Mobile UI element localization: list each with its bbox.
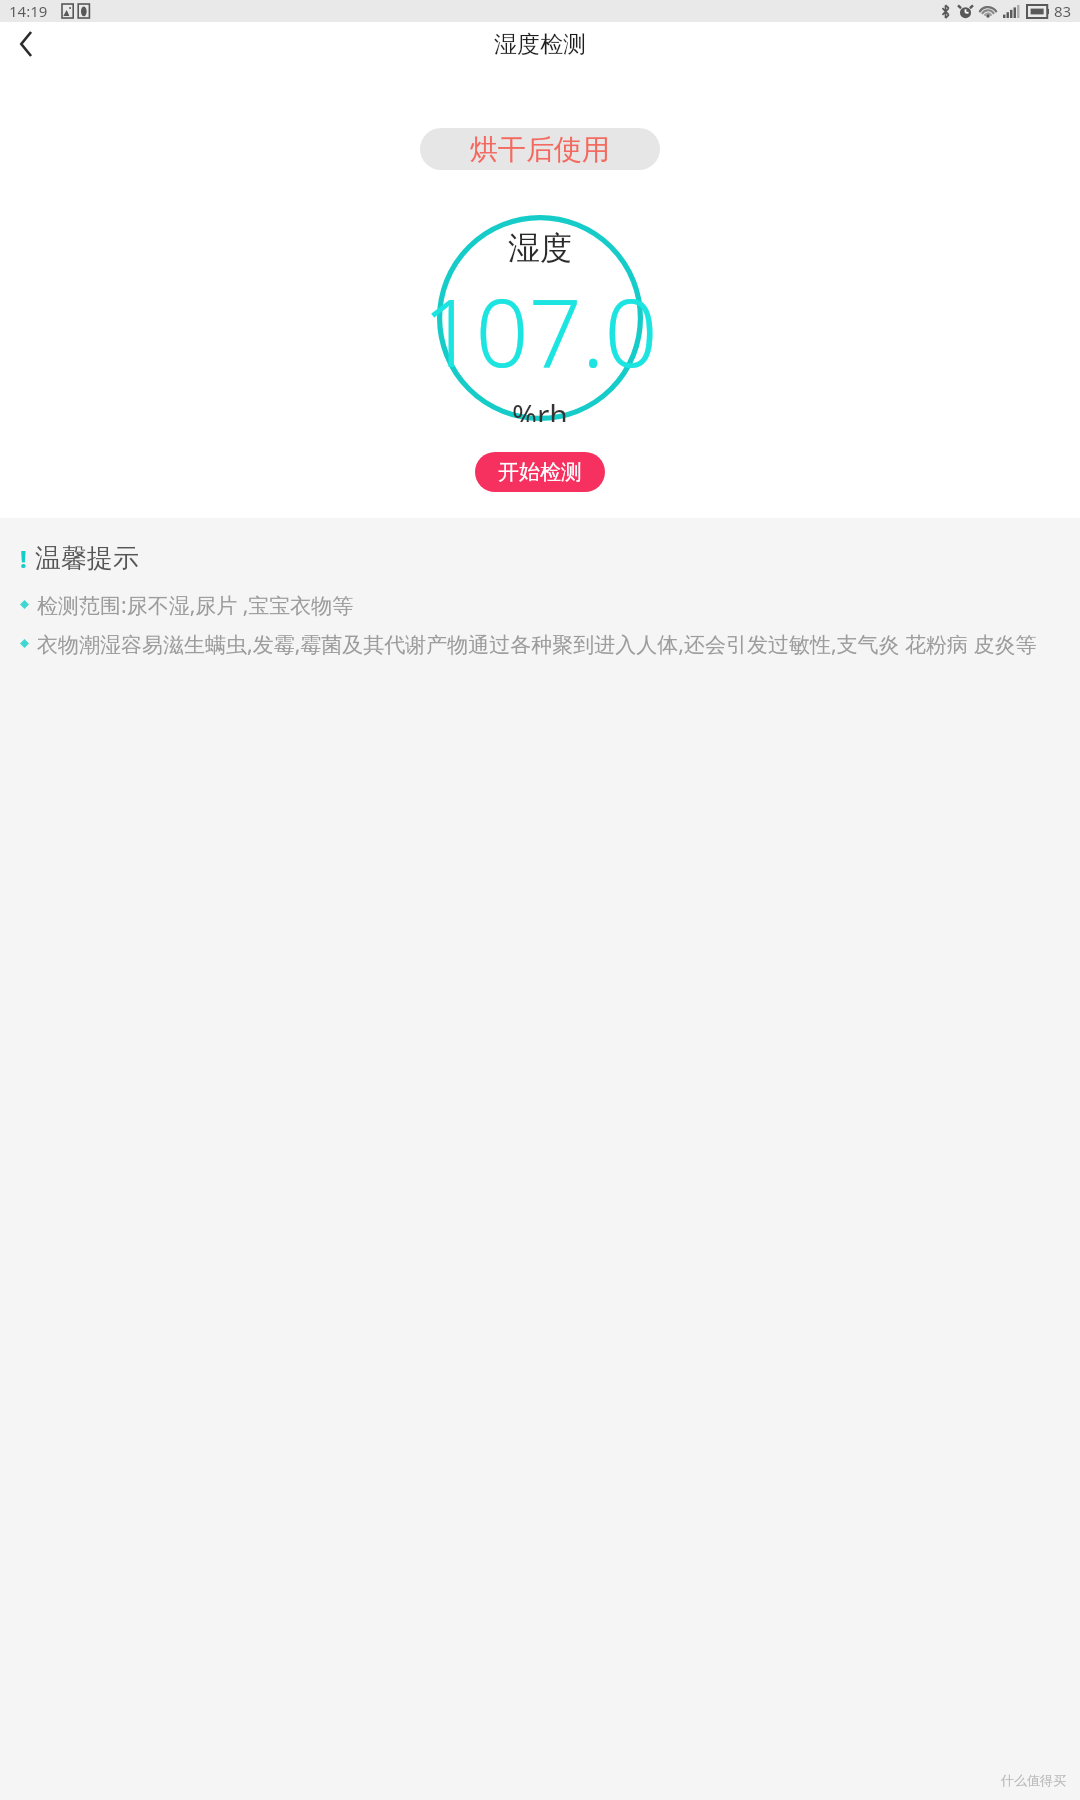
staticText: 衣物潮湿容易滋生螨虫,发霉,霉菌及其代谢产物通过各种聚到进入人体,还会引发过敏性…: [37, 630, 1037, 659]
button[interactable]: 烘干后使用: [420, 128, 660, 170]
staticText: 湿度: [508, 228, 572, 268]
staticText: !: [20, 542, 27, 575]
staticText: 烘干后使用: [470, 132, 610, 167]
staticText: 开始检测: [498, 459, 582, 485]
staticText: 温馨提示: [35, 542, 139, 575]
staticText: 什么值得买: [1001, 1772, 1066, 1788]
staticText: %rh: [512, 395, 568, 422]
button[interactable]: Back: [0, 22, 52, 66]
staticText: 14:19: [9, 1, 48, 21]
button[interactable]: 开始检测: [475, 452, 605, 492]
staticText: 检测范围:尿不湿,尿片 ,宝宝衣物等: [37, 591, 354, 620]
staticText: 107.0: [422, 268, 658, 395]
staticText: 83: [1054, 1, 1072, 21]
staticText: 湿度检测: [494, 30, 586, 59]
